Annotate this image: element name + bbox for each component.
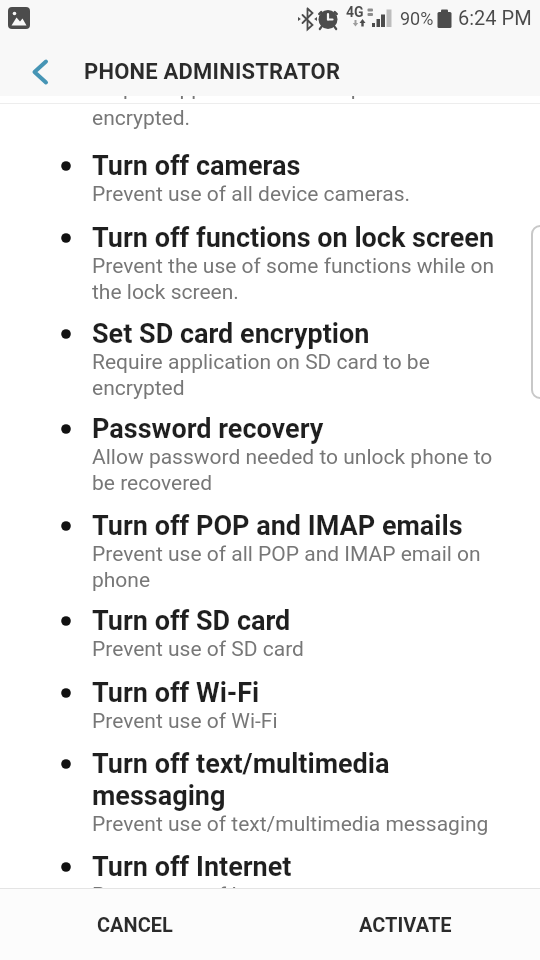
- button[interactable]: Turn off SD card: [61, 605, 502, 662]
- staticText: Require application on SD card to be enc…: [92, 350, 430, 400]
- staticText: ACTIVATE: [359, 913, 452, 936]
- button[interactable]: [16, 48, 64, 96]
- button[interactable]: ACTIVATE: [270, 889, 540, 960]
- staticText: Prevent use of Wi-Fi: [92, 709, 278, 734]
- staticText: Prevent the use of some functions while …: [92, 254, 495, 304]
- staticText: Prevent use of SD card: [92, 637, 304, 662]
- button[interactable]: CANCEL: [0, 889, 270, 960]
- button[interactable]: Turn off cameras: [61, 150, 502, 207]
- button[interactable]: Turn off Internet: [61, 851, 502, 888]
- staticText: Turn off POP and IMAP emails: [92, 510, 463, 542]
- staticText: CANCEL: [97, 913, 173, 936]
- staticText: Prevent use of Internet: [92, 883, 304, 888]
- staticText: Allow password needed to unlock phone to…: [92, 445, 493, 495]
- staticText: encrypted.: [92, 106, 191, 131]
- staticText: Require applications on the phone to be: [92, 96, 461, 101]
- staticText: Turn off cameras: [92, 150, 301, 182]
- staticText: Prevent use of all device cameras.: [92, 182, 411, 207]
- staticText: Turn off functions on lock screen: [92, 222, 495, 254]
- button[interactable]: Turn off Wi-Fi: [61, 677, 502, 734]
- staticText: 6:24 PM: [458, 6, 532, 29]
- staticText: Turn off Wi-Fi: [92, 677, 260, 709]
- button[interactable]: Set SD card encryption: [61, 318, 502, 400]
- staticText: Set SD card encryption: [92, 318, 370, 350]
- button[interactable]: Turn off POP and IMAP emails: [61, 510, 502, 592]
- button[interactable]: Turn off text/multimedia messaging: [61, 748, 502, 837]
- button[interactable]: Turn off functions on lock screen: [61, 222, 502, 304]
- staticText: 4G: [346, 4, 364, 20]
- staticText: Password recovery: [92, 413, 324, 445]
- staticText: Turn off Internet: [92, 851, 292, 883]
- staticText: Turn off SD card: [92, 605, 291, 637]
- staticText: 90%: [400, 8, 434, 29]
- staticText: PHONE ADMINISTRATOR: [84, 59, 341, 85]
- staticText: Prevent use of all POP and IMAP email on…: [92, 542, 481, 592]
- staticText: Turn off text/multimedia messaging: [92, 748, 390, 812]
- staticText: Prevent use of text/multimedia messaging: [92, 812, 489, 837]
- button[interactable]: Password recovery: [61, 413, 502, 495]
